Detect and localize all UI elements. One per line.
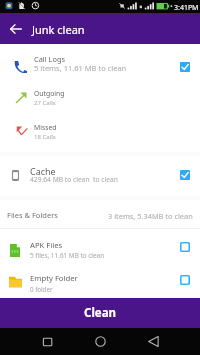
button[interactable]: Cache <box>0 156 200 196</box>
staticText: Call Logs <box>34 54 65 64</box>
staticText: 18 Calls <box>34 133 56 141</box>
button[interactable]: Select Call Logs <box>180 62 190 72</box>
staticText: Missed <box>34 123 57 132</box>
button[interactable]: Home <box>88 328 112 355</box>
button[interactable]: Select APK Files <box>180 242 190 252</box>
button[interactable]: Missed <box>0 116 200 152</box>
button[interactable]: Back <box>141 328 165 355</box>
button[interactable]: Back <box>4 13 28 44</box>
button[interactable]: Empty Folder <box>0 262 200 296</box>
button[interactable]: Clean <box>0 298 200 328</box>
staticText: 27 Calls <box>34 99 56 107</box>
staticText: Empty Folder <box>30 273 78 283</box>
button[interactable]: APK Files <box>0 228 200 262</box>
button[interactable]: Call Logs <box>0 44 200 80</box>
staticText: 3 items, 5.34MB to clean <box>108 211 193 221</box>
button[interactable]: Recent apps <box>36 328 60 355</box>
staticText: APK Files <box>30 240 63 250</box>
staticText: Junk clean <box>32 22 85 37</box>
staticText: Outgoing <box>34 89 65 98</box>
button[interactable]: Select Empty Folder <box>180 275 190 285</box>
staticText: Files & Folders <box>7 210 58 220</box>
staticText: 0 folder <box>30 285 53 293</box>
staticText: Clean <box>84 305 117 321</box>
staticText: Cache <box>30 165 56 177</box>
staticText: 3:41PM <box>174 3 199 13</box>
button[interactable]: Select Cache <box>180 170 190 180</box>
button[interactable]: Outgoing <box>0 80 200 116</box>
staticText: 5 items, 11.61 MB to clean <box>34 63 127 73</box>
staticText: 5 files, 11.61 MB to clean <box>30 251 105 260</box>
staticText: 429.64 MB to clean to clean <box>30 175 118 184</box>
